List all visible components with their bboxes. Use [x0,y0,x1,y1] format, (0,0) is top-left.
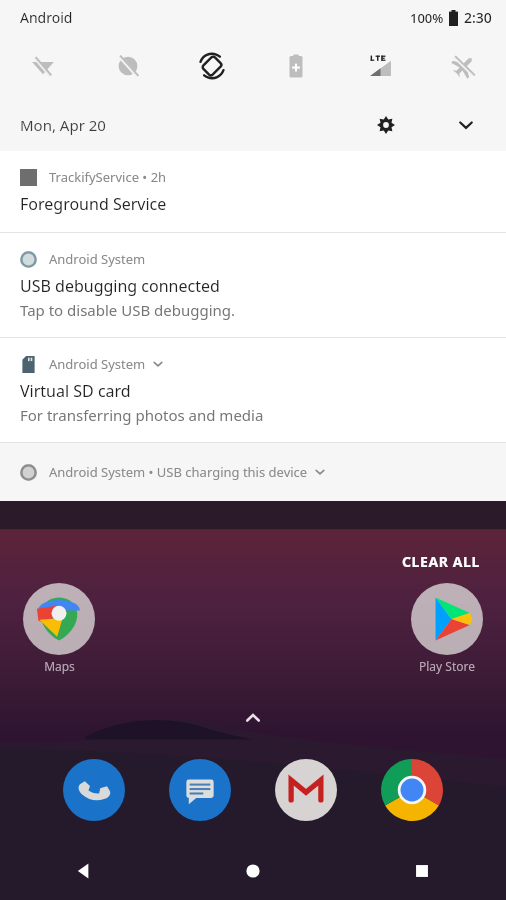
button[interactable]: Android System [0,233,506,337]
button[interactable]: Back [0,842,168,900]
button[interactable]: Messages [168,758,232,822]
button[interactable]: Do not disturb off [85,34,170,98]
button[interactable]: Android System • USB charging this devic… [0,443,506,501]
staticText: 100% [410,9,444,27]
button[interactable]: CLEAR ALL [396,546,486,577]
button[interactable]: Maps [22,582,96,656]
staticText: Mon, Apr 20 [20,115,106,135]
button[interactable]: Battery saver [254,34,338,98]
button[interactable]: Chrome [380,758,444,822]
button[interactable]: Mobile data LTE [338,34,422,98]
staticText: TrackifyService • 2h [49,168,167,186]
staticText: Maps [44,658,75,674]
button[interactable]: Phone [62,758,126,822]
button[interactable]: Expand [446,105,486,145]
button[interactable]: Android System [0,338,506,442]
staticText: CLEAR ALL [402,552,480,571]
staticText: USB debugging connected [20,275,220,297]
button[interactable]: Gmail [274,758,338,822]
button[interactable]: TrackifyService • 2h [0,151,506,232]
button[interactable]: Home [168,842,337,900]
staticText: Virtual SD card [20,380,131,402]
staticText: For transferring photos and media [20,405,264,425]
button[interactable]: Play Store [410,582,484,656]
staticText: Android System • USB charging this devic… [49,463,308,481]
staticText: Tap to disable USB debugging. [20,300,236,320]
staticText: Play Store [419,658,475,674]
button[interactable]: Settings [366,105,406,145]
button[interactable]: App drawer [235,700,271,736]
button[interactable]: Airplane mode off [422,34,506,98]
staticText: Android System [49,355,146,373]
staticText: Android System [49,250,146,268]
button[interactable]: Auto rotate [170,34,254,98]
staticText: Foreground Service [20,193,167,215]
staticText: Android [20,8,73,27]
button[interactable]: Wi-Fi off [0,34,85,98]
button[interactable]: Recents [337,842,506,900]
staticText: 2:30 [464,8,492,27]
